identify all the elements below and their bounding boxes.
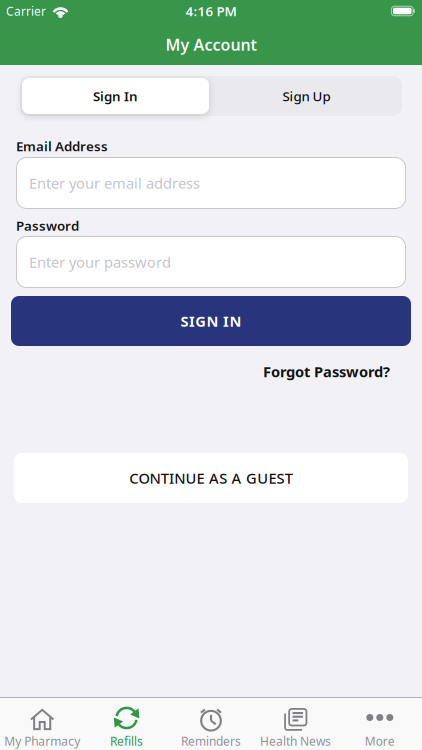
- staticText: Forgot Password?: [263, 362, 390, 381]
- button[interactable]: Reminders: [169, 698, 253, 750]
- staticText: Reminders: [181, 733, 241, 749]
- button[interactable]: Sign Up: [211, 76, 402, 116]
- staticText: Email Address: [16, 137, 108, 155]
- staticText: Password: [16, 217, 79, 234]
- button[interactable]: More: [338, 698, 422, 750]
- staticText: Sign Up: [282, 87, 330, 105]
- staticText: Carrier: [6, 3, 46, 19]
- button[interactable]: My Pharmacy: [0, 698, 84, 750]
- staticText: CONTINUE AS A GUEST: [129, 468, 293, 488]
- staticText: SIGN IN: [181, 311, 241, 331]
- staticText: Health News: [260, 733, 331, 749]
- button[interactable]: CONTINUE AS A GUEST: [14, 453, 408, 503]
- button[interactable]: Forgot Password?: [150, 362, 390, 381]
- staticText: My Pharmacy: [4, 733, 80, 749]
- button[interactable]: SIGN IN: [11, 296, 411, 346]
- staticText: More: [365, 733, 395, 749]
- staticText: Refills: [110, 733, 143, 749]
- staticText: Sign In: [93, 87, 138, 105]
- staticText: Enter your email address: [29, 173, 200, 193]
- button[interactable]: Refills: [85, 698, 169, 750]
- staticText: 4:16 PM: [185, 2, 236, 20]
- button[interactable]: Sign In: [20, 76, 211, 116]
- staticText: My Account: [165, 34, 256, 55]
- staticText: Enter your password: [29, 252, 171, 272]
- textField[interactable]: [29, 168, 393, 198]
- button[interactable]: Health News: [253, 698, 337, 750]
- textField[interactable]: [29, 247, 393, 277]
